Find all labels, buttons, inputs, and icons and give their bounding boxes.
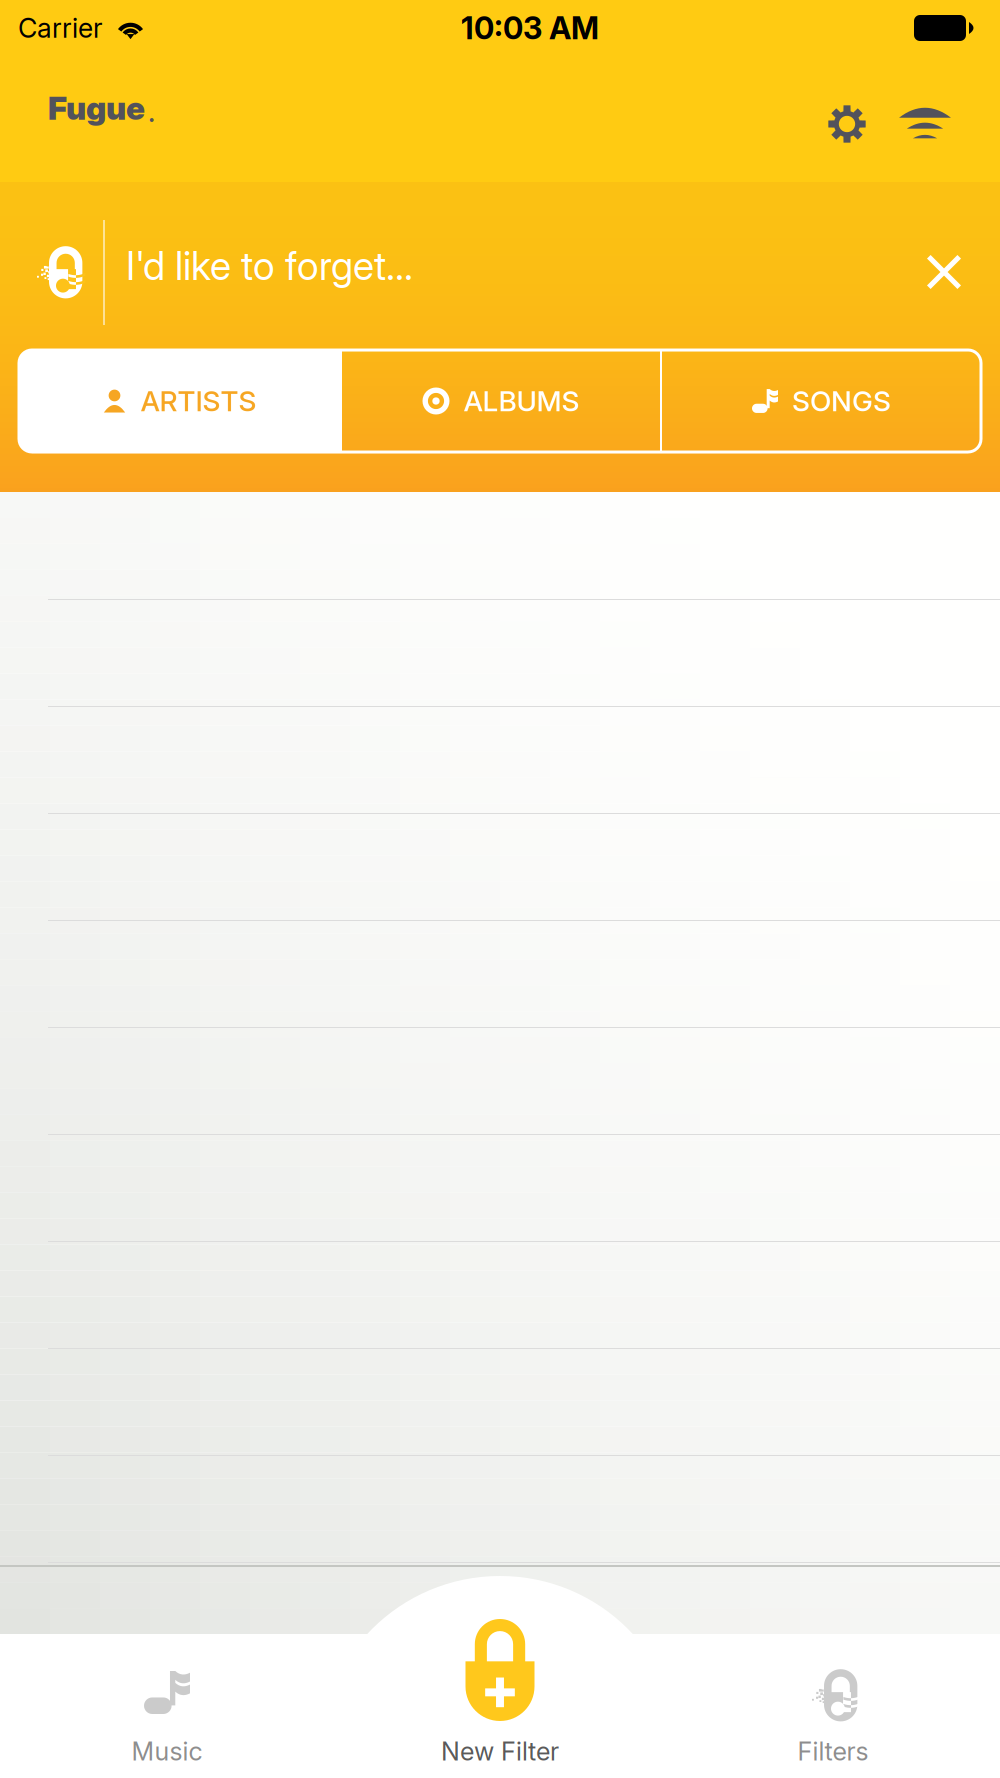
button[interactable]: Clear filter [901, 229, 987, 315]
button[interactable] [0, 707, 1000, 813]
staticText: Fugue [48, 89, 145, 127]
button[interactable] [0, 1135, 1000, 1241]
staticText: . [148, 100, 155, 127]
button[interactable]: Filters [666, 1600, 999, 1778]
staticText: New Filter [441, 1736, 559, 1767]
staticText: ALBUMS [463, 384, 579, 418]
staticText: Music [131, 1736, 202, 1767]
button[interactable]: Fugue [48, 77, 198, 139]
button[interactable]: Now Playing [883, 82, 967, 166]
staticText: 10:03 AM [461, 9, 599, 46]
button[interactable] [0, 921, 1000, 1027]
button[interactable]: SONGS [662, 350, 981, 452]
button[interactable] [0, 1349, 1000, 1455]
staticText: Filters [797, 1736, 868, 1767]
button[interactable] [0, 814, 1000, 920]
button[interactable] [0, 600, 1000, 706]
button[interactable]: ARTISTS [19, 350, 340, 452]
button[interactable]: Settings [805, 82, 889, 166]
staticText: SONGS [792, 384, 891, 418]
button[interactable]: ALBUMS [342, 350, 660, 452]
staticText: Carrier [18, 12, 103, 44]
button[interactable] [0, 1242, 1000, 1348]
button[interactable]: Music [0, 1600, 333, 1778]
staticText: ARTISTS [140, 384, 256, 418]
button[interactable] [0, 1456, 1000, 1562]
button[interactable]: New Filter [333, 1600, 666, 1778]
staticText: I'd like to forget... [126, 243, 413, 289]
button[interactable] [0, 1028, 1000, 1134]
